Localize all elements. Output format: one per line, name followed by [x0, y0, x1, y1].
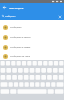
- button[interactable]: Сообщения: [0, 22, 64, 32]
- button[interactable]: Back: [0, 3, 9, 12]
- staticText: Поиск разделов: [9, 7, 24, 9]
- button[interactable]: Сообщения и звонки: [0, 32, 64, 42]
- staticText: Сообщения на сайте: [10, 55, 31, 58]
- button[interactable]: [0, 60, 64, 100]
- button[interactable]: Сообщения и заявки: [0, 42, 64, 52]
- staticText: Сообщения и заявки: [10, 46, 31, 49]
- staticText: Сообщения: [5, 15, 16, 17]
- staticText: Сообщения и звонки: [10, 36, 31, 39]
- staticText: Сообщения: [10, 26, 22, 29]
- button[interactable]: Сообщения на сайте: [0, 52, 64, 60]
- button[interactable]: Clear search: [57, 14, 62, 19]
